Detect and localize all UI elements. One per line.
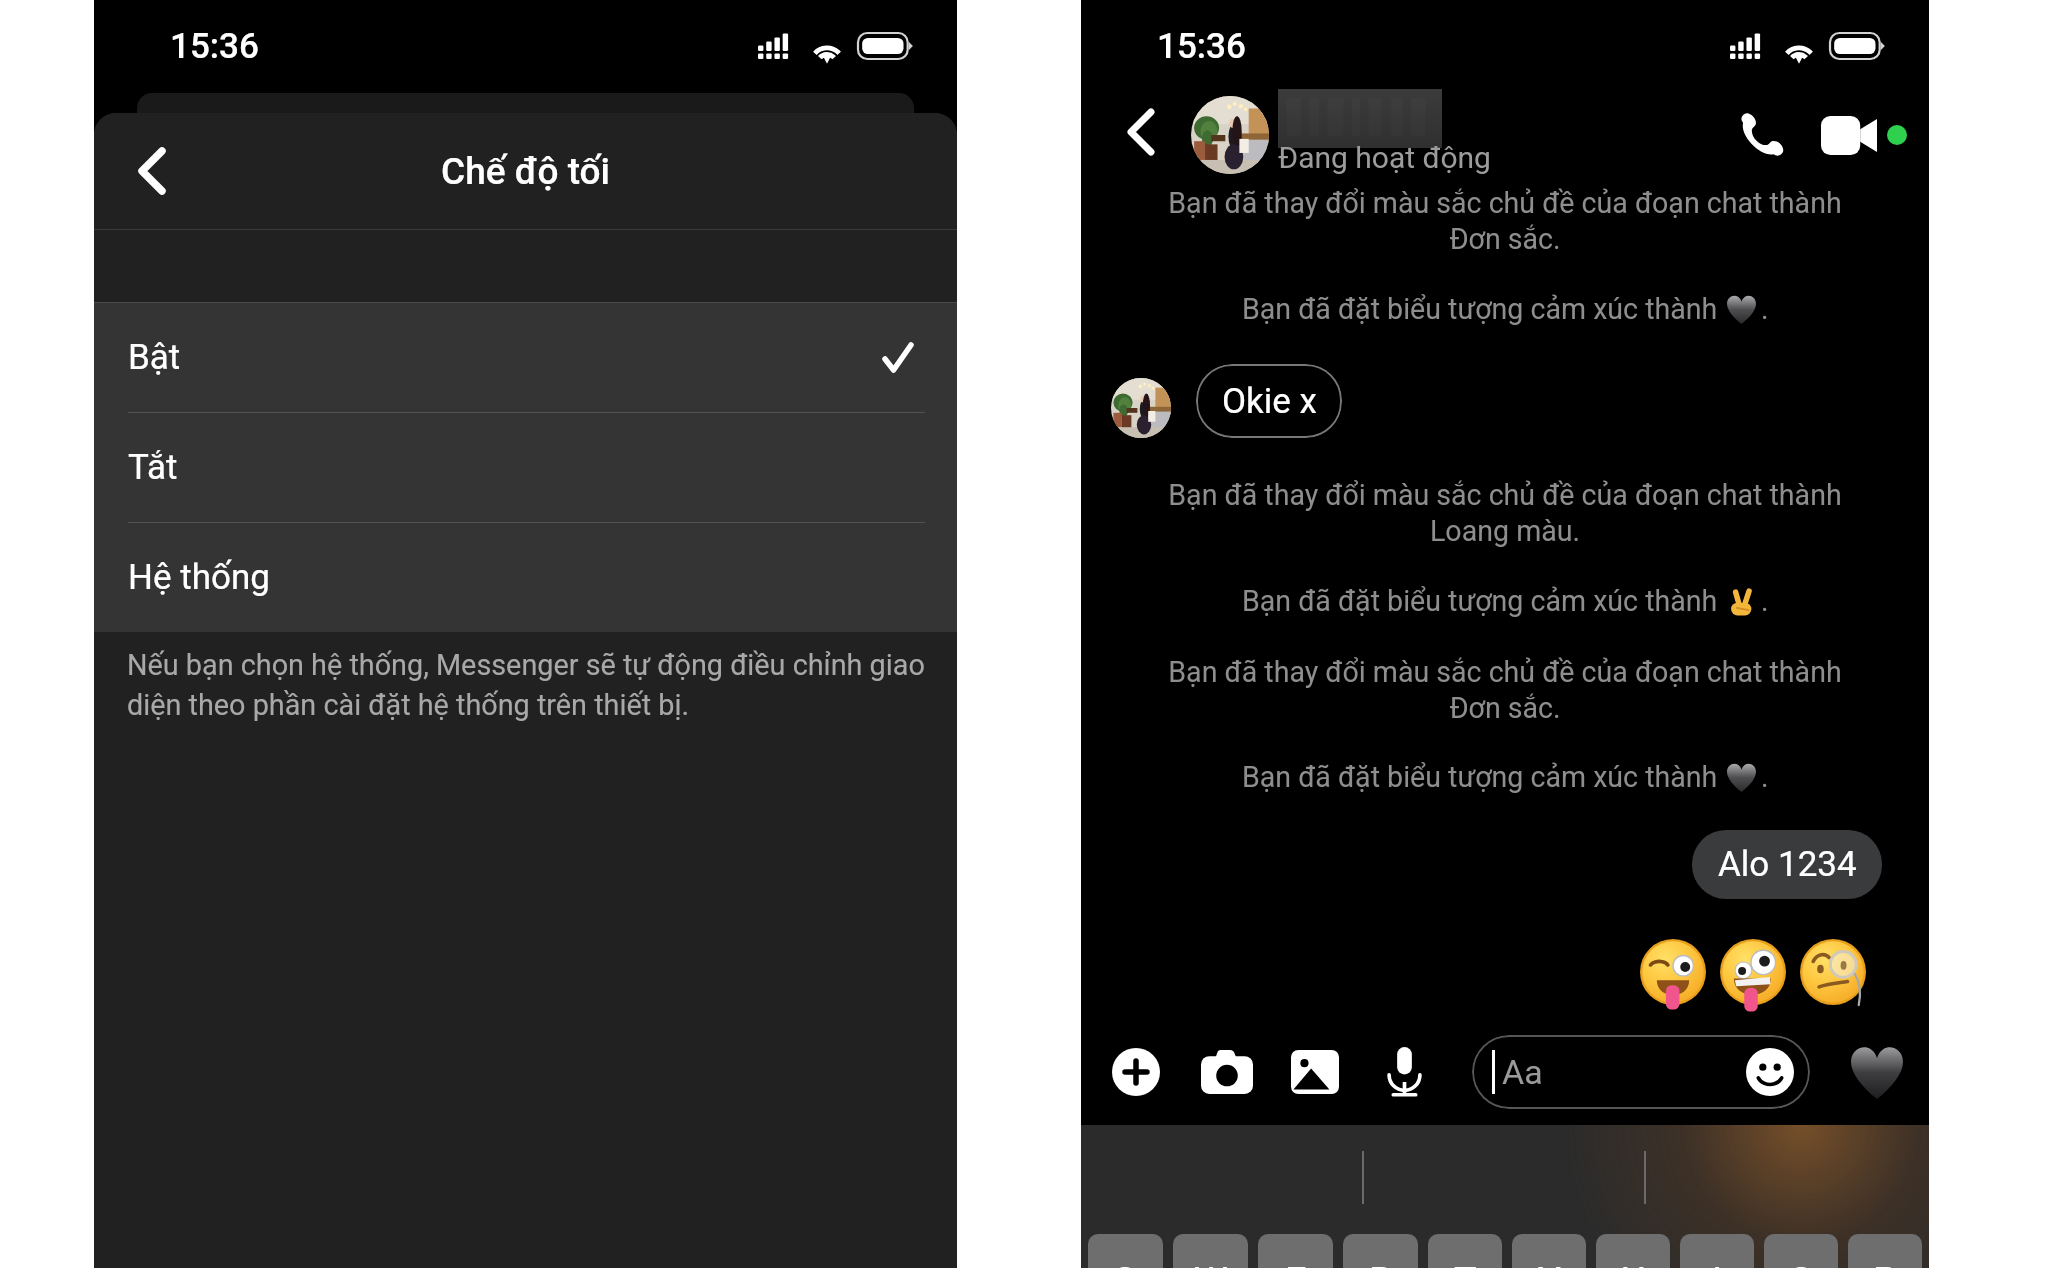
button[interactable]: Y — [1512, 1234, 1586, 1268]
button[interactable]: More options — [1112, 1048, 1160, 1096]
button[interactable]: Open profile — [1189, 92, 1569, 180]
staticText: Bạn đã đặt biểu tượng cảm xúc thành — [1242, 292, 1718, 326]
button[interactable]: Aa — [1472, 1035, 1810, 1109]
staticText: Bạn đã thay đổi màu sắc chủ đề của đoạn … — [1121, 186, 1889, 256]
button[interactable]: Stickers — [1744, 1046, 1796, 1098]
staticText: 15:36 — [170, 26, 259, 67]
button[interactable]: Alo 1234 — [1692, 830, 1882, 899]
staticText: Bạn đã thay đổi màu sắc chủ đề của đoạn … — [1121, 655, 1889, 725]
button[interactable]: Gallery — [1287, 1044, 1343, 1100]
button[interactable]: Back — [1111, 102, 1171, 162]
staticText: Hệ thống — [128, 557, 270, 598]
button[interactable]: Okie x — [1196, 364, 1342, 438]
staticText: Alo 1234 — [1718, 844, 1857, 885]
staticText: Bạn đã đặt biểu tượng cảm xúc thành — [1242, 584, 1718, 618]
staticText: . — [1761, 584, 1769, 618]
staticText: U — [1621, 1260, 1646, 1268]
staticText: Q — [1112, 1260, 1139, 1268]
button[interactable]: Q — [1088, 1234, 1163, 1268]
button[interactable]: Voice call — [1729, 103, 1793, 167]
staticText: Nếu bạn chọn hệ thống, Messenger sẽ tự đ… — [127, 648, 925, 722]
staticText: Bạn đã đặt biểu tượng cảm xúc thành — [1242, 760, 1718, 794]
staticText: W — [1194, 1260, 1228, 1268]
staticText: R — [1369, 1260, 1393, 1268]
button[interactable]: O — [1764, 1234, 1838, 1268]
staticText: O — [1788, 1260, 1815, 1268]
button[interactable]: Back — [114, 133, 190, 209]
button[interactable]: Zany face — [1720, 939, 1786, 1013]
staticText: I — [1712, 1260, 1723, 1268]
button[interactable]: R — [1343, 1234, 1418, 1268]
button[interactable]: I — [1680, 1234, 1754, 1268]
staticText: Okie x — [1222, 381, 1317, 422]
button[interactable]: W — [1173, 1234, 1248, 1268]
button[interactable]: Video call — [1817, 103, 1881, 167]
button[interactable]: Camera — [1199, 1044, 1255, 1100]
staticText: . — [1761, 292, 1769, 326]
button[interactable]: Bật — [94, 303, 957, 412]
button[interactable]: U — [1596, 1234, 1670, 1268]
staticText: . — [1761, 760, 1769, 794]
button[interactable]: P — [1848, 1234, 1922, 1268]
button[interactable]: T — [1428, 1234, 1502, 1268]
staticText: P — [1873, 1260, 1897, 1268]
button[interactable]: Face with monocle — [1800, 939, 1866, 1013]
button[interactable]: Tắt — [94, 413, 957, 522]
staticText: Bạn đã thay đổi màu sắc chủ đề của đoạn … — [1121, 478, 1889, 548]
staticText: Y — [1538, 1260, 1561, 1268]
staticText: Chế độ tối — [441, 150, 610, 193]
staticText: T — [1454, 1260, 1477, 1268]
staticText: Bật — [128, 337, 181, 378]
button[interactable]: Hệ thống — [94, 523, 957, 632]
staticText: 15:36 — [1157, 26, 1246, 67]
button[interactable]: Send like — [1846, 1041, 1908, 1103]
staticText: E — [1285, 1260, 1307, 1268]
button[interactable]: E — [1258, 1234, 1333, 1268]
staticText: Đang hoạt động — [1278, 140, 1491, 175]
staticText: Tắt — [128, 447, 178, 488]
button[interactable]: Voice message — [1376, 1044, 1432, 1100]
button[interactable]: Open profile — [1111, 378, 1171, 438]
staticText: Aa — [1502, 1052, 1543, 1092]
button[interactable]: Winking face with tongue — [1640, 939, 1706, 1013]
